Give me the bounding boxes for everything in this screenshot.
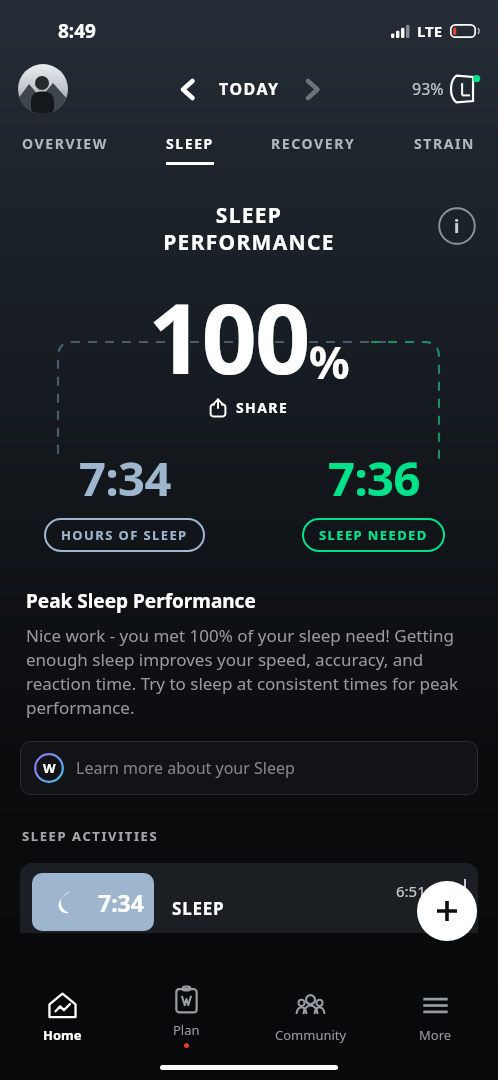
button[interactable]: Home	[0, 980, 124, 1054]
staticText: 6:51 AM	[396, 881, 453, 901]
button[interactable]: TODAY	[219, 78, 280, 100]
staticText: OVERVIEW	[22, 134, 108, 153]
staticText: HOURS OF SLEEP	[61, 526, 188, 544]
button[interactable]: 7:34	[0, 446, 249, 552]
button[interactable]: 7:36	[249, 446, 498, 552]
button[interactable]: More	[373, 980, 498, 1054]
staticText: SLEEP PERFORMANCE	[70, 201, 428, 256]
staticText: W	[43, 759, 56, 777]
button[interactable]: STRAIN	[404, 130, 486, 169]
button[interactable]: W	[20, 741, 478, 795]
button[interactable]: Add sleep activity	[417, 881, 477, 941]
staticText: RECOVERY	[271, 134, 356, 153]
staticText: Learn more about your Sleep	[76, 757, 295, 779]
button[interactable]: Profile	[18, 64, 68, 114]
staticText: SLEEP	[166, 134, 214, 153]
staticText: 7:34	[98, 887, 144, 918]
staticText: 7:36	[328, 446, 420, 510]
staticText: Plan	[173, 1021, 200, 1039]
staticText: SLEEP	[172, 897, 225, 920]
staticText: LTE	[417, 21, 443, 41]
staticText: SLEEP ACTIVITIES	[22, 827, 159, 845]
button[interactable]: RECOVERY	[261, 130, 366, 169]
staticText: More	[419, 1026, 452, 1044]
button[interactable]: Previous day	[169, 71, 205, 107]
staticText: STRAIN	[414, 134, 476, 153]
button[interactable]: Community	[248, 980, 373, 1054]
staticText: SLEEP NEEDED	[319, 526, 428, 544]
staticText: %	[309, 331, 350, 392]
button[interactable]: SLEEP	[156, 130, 224, 169]
staticText: Home	[43, 1026, 82, 1044]
button[interactable]: SHARE	[199, 392, 299, 423]
staticText: 100	[148, 270, 309, 402]
staticText: Peak Sleep Performance	[26, 588, 256, 614]
staticText: 93%	[412, 78, 444, 100]
staticText: Nice work - you met 100% of your sleep n…	[26, 624, 472, 719]
button[interactable]: Info	[438, 207, 476, 245]
button[interactable]: Plan	[124, 980, 248, 1054]
button[interactable]: OVERVIEW	[12, 130, 118, 169]
staticText: Community	[275, 1026, 347, 1044]
staticText: i	[454, 214, 460, 239]
button[interactable]: 7:34	[20, 863, 478, 933]
staticText: 8:49	[58, 18, 96, 44]
button[interactable]: Next day	[294, 71, 330, 107]
button[interactable]: Device battery 93 percent	[412, 71, 482, 107]
staticText: 7:34	[79, 446, 171, 510]
staticText: SHARE	[236, 398, 289, 417]
